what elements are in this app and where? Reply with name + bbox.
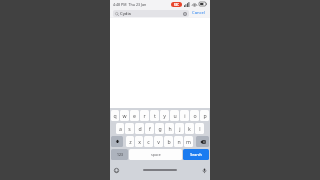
staticText: c [147, 138, 150, 145]
staticText: w [122, 112, 127, 119]
button[interactable]: n [174, 136, 183, 147]
button[interactable]: x [135, 136, 143, 147]
staticText: z [129, 138, 132, 145]
button[interactable]: Backspace [196, 136, 209, 147]
staticText: Search [190, 152, 202, 157]
staticText: i [184, 112, 186, 119]
staticText: n [177, 138, 181, 145]
button[interactable]: u [170, 110, 179, 121]
button[interactable]: m [184, 136, 193, 147]
button[interactable]: Cydia [113, 10, 189, 17]
staticText: b [167, 138, 171, 145]
staticText: h [168, 125, 172, 132]
button[interactable]: k [185, 123, 194, 134]
staticText: y [163, 112, 166, 119]
staticText: q [113, 112, 117, 119]
button[interactable]: p [200, 110, 209, 121]
button[interactable]: v [154, 136, 163, 147]
staticText: f [149, 125, 151, 132]
button[interactable]: d [135, 123, 144, 134]
staticText: k [188, 125, 191, 132]
staticText: j [179, 125, 181, 132]
staticText: t [154, 112, 156, 119]
staticText: x [138, 138, 141, 145]
button[interactable]: 123 [111, 149, 128, 160]
button[interactable]: space [129, 149, 182, 160]
staticText: Cydia [120, 11, 131, 17]
staticText: p [203, 112, 207, 119]
button[interactable]: l [195, 123, 204, 134]
button[interactable]: o [190, 110, 199, 121]
button[interactable]: Emoji keyboard [113, 167, 119, 173]
button[interactable]: r [140, 110, 149, 121]
button[interactable]: Clear text [183, 12, 187, 16]
button[interactable]: a [116, 123, 124, 134]
button[interactable]: q [111, 110, 119, 121]
button[interactable]: h [165, 123, 174, 134]
button[interactable]: Shift [111, 136, 123, 147]
staticText: Cancel [192, 10, 206, 16]
staticText: u [173, 112, 177, 119]
staticText: REC [174, 3, 179, 7]
staticText: s [128, 125, 131, 132]
button[interactable]: i [180, 110, 189, 121]
button[interactable]: b [164, 136, 173, 147]
staticText: 4:48 PM Thu 23 Jan [113, 2, 147, 7]
button[interactable]: c [144, 136, 153, 147]
staticText: space [151, 152, 161, 157]
staticText: m [186, 138, 191, 145]
button[interactable]: t [150, 110, 159, 121]
button[interactable]: z [126, 136, 134, 147]
staticText: g [158, 125, 162, 132]
button[interactable]: y [160, 110, 169, 121]
button[interactable]: j [175, 123, 184, 134]
staticText: e [133, 112, 136, 119]
staticText: d [138, 125, 142, 132]
button[interactable]: e [130, 110, 139, 121]
staticText: l [199, 125, 201, 132]
button[interactable]: g [155, 123, 164, 134]
button[interactable]: f [145, 123, 154, 134]
staticText: o [193, 112, 197, 119]
button[interactable]: Search [183, 149, 209, 160]
button[interactable]: Dictation [201, 167, 207, 173]
button[interactable]: s [125, 123, 134, 134]
staticText: a [119, 125, 122, 132]
staticText: r [143, 112, 146, 119]
staticText: v [157, 138, 160, 145]
button[interactable]: w [120, 110, 129, 121]
button[interactable]: Cancel [191, 10, 207, 16]
staticText: 123 [117, 152, 123, 157]
